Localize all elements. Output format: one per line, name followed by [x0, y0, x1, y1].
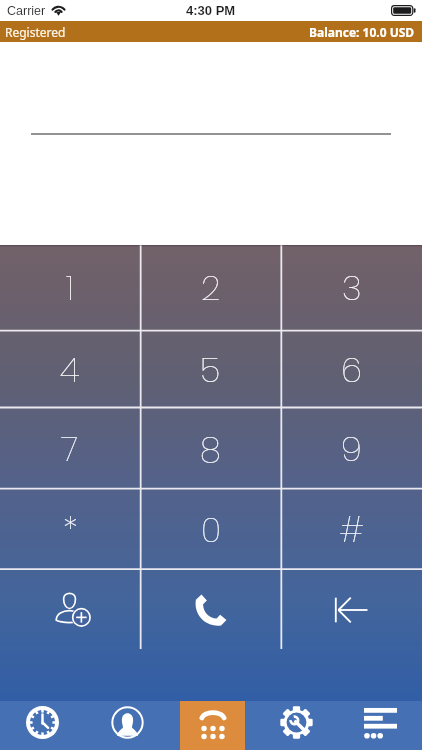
- staticText: #: [339, 506, 365, 554]
- button[interactable]: More: [338, 701, 422, 750]
- staticText: Carrier: [7, 4, 46, 18]
- button[interactable]: 0: [140, 489, 281, 570]
- button[interactable]: 6: [281, 331, 422, 408]
- button[interactable]: Recent calls: [0, 701, 85, 750]
- staticText: 0: [201, 506, 221, 554]
- staticText: 3: [342, 264, 362, 312]
- staticText: *: [63, 506, 78, 554]
- staticText: Registered: [5, 24, 66, 40]
- button[interactable]: 4: [0, 331, 140, 408]
- staticText: 2: [201, 264, 221, 312]
- button[interactable]: 1: [0, 245, 140, 331]
- button[interactable]: Add contact: [0, 570, 140, 649]
- button[interactable]: 2: [140, 245, 281, 331]
- staticText: 4: [60, 346, 80, 394]
- button[interactable]: Contacts: [85, 701, 170, 750]
- button[interactable]: *: [0, 489, 140, 570]
- button[interactable]: #: [281, 489, 422, 570]
- button[interactable]: Call: [140, 570, 281, 649]
- staticText: 6: [341, 346, 362, 394]
- button[interactable]: 3: [281, 245, 422, 331]
- button[interactable]: 7: [0, 408, 140, 489]
- button[interactable]: 5: [140, 331, 281, 408]
- button[interactable]: [0, 42, 422, 245]
- button[interactable]: Backspace: [281, 570, 422, 649]
- button[interactable]: Settings: [254, 701, 338, 750]
- button[interactable]: 8: [140, 408, 281, 489]
- staticText: 9: [341, 425, 362, 473]
- staticText: 7: [61, 425, 79, 473]
- staticText: 5: [200, 346, 221, 394]
- button[interactable]: 9: [281, 408, 422, 489]
- staticText: 8: [200, 425, 221, 473]
- staticText: 4:30 PM: [186, 3, 236, 18]
- button[interactable]: Keypad: [170, 701, 254, 750]
- staticText: 1: [66, 264, 74, 312]
- staticText: Balance: 10.0 USD: [309, 24, 415, 40]
